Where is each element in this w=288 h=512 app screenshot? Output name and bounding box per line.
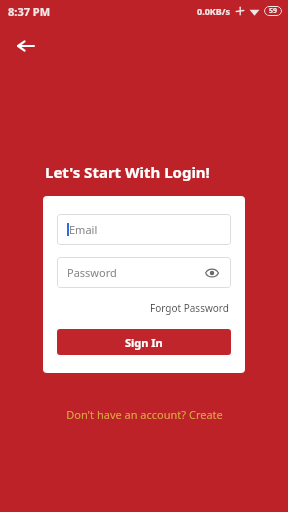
- staticText: 8:37 PM: [8, 4, 51, 19]
- button[interactable]: Show password: [203, 264, 221, 282]
- staticText: 0.0KB/s: [197, 5, 231, 17]
- staticText: Password: [67, 265, 117, 280]
- staticText: Email: [69, 222, 98, 237]
- staticText: 59: [269, 6, 278, 16]
- button[interactable]: Forgot Password: [148, 299, 231, 317]
- staticText: Let's Start With Login!: [45, 162, 210, 182]
- button[interactable]: Sign In: [57, 329, 231, 355]
- staticText: Sign In: [125, 335, 163, 350]
- button[interactable]: Email: [57, 214, 231, 245]
- staticText: Don't have an account? Create: [66, 407, 223, 422]
- staticText: Forgot Password: [150, 301, 229, 315]
- button[interactable]: Password: [57, 257, 231, 288]
- button[interactable]: Don't have an account? Create: [60, 401, 229, 428]
- button[interactable]: Back: [6, 26, 46, 66]
